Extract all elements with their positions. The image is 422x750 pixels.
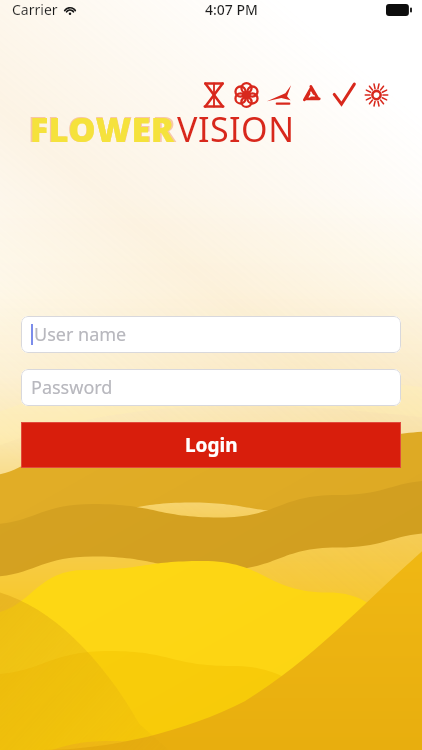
staticText: Carrier (12, 0, 58, 19)
staticText: Login (185, 432, 238, 458)
staticText: User name (34, 322, 127, 347)
staticText: Password (31, 375, 113, 400)
staticText: VISION (177, 106, 295, 152)
button[interactable]: Password (21, 369, 401, 406)
button[interactable]: Login (21, 422, 401, 468)
staticText: FLOWER (28, 105, 177, 153)
staticText: 4:07 PM (205, 0, 258, 19)
staticText: FLOWER (30, 106, 175, 152)
button[interactable]: User name (21, 316, 401, 353)
